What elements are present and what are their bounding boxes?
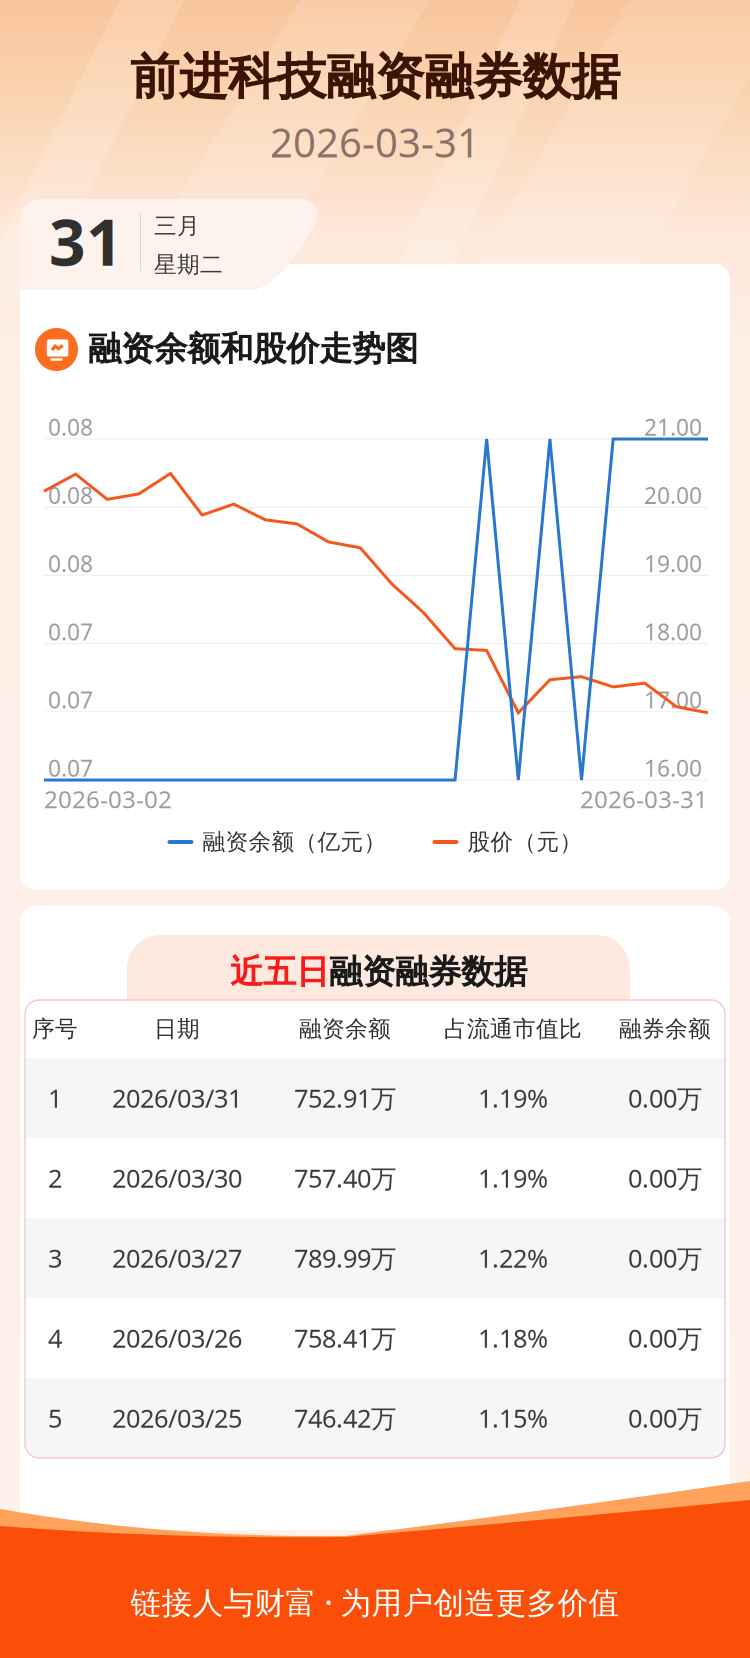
staticText: 0.00万 [628,1401,702,1435]
staticText: 2026/03/27 [112,1241,242,1275]
staticText: 1.18% [478,1321,548,1355]
staticText: 5 [48,1401,62,1435]
staticText: 1.19% [478,1161,548,1195]
staticText: 0.08 [48,480,93,510]
staticText: 2026-03-02 [44,783,172,815]
staticText: 占流通市值比 [444,1015,582,1043]
staticText: 1.22% [478,1241,548,1275]
staticText: 746.42万 [294,1401,396,1435]
staticText: 21.00 [644,412,702,442]
staticText: 0.08 [48,548,93,578]
staticText: 2026/03/25 [112,1401,242,1435]
staticText: 2 [48,1161,62,1195]
staticText: 融资融券数据 [329,951,527,992]
staticText: 融资余额（亿元） [202,828,386,856]
staticText: 0.07 [48,616,93,647]
staticText: 20.00 [644,480,702,510]
staticText: 日期 [154,1015,200,1043]
staticText: 0.00万 [628,1241,702,1275]
staticText: 股价（元） [467,828,582,856]
staticText: 近五日 [230,951,329,992]
staticText: 0.07 [48,753,93,783]
staticText: 789.99万 [294,1241,396,1275]
staticText: 1.15% [478,1401,548,1435]
staticText: 0.00万 [628,1081,702,1115]
staticText: 16.00 [644,753,702,783]
staticText: 757.40万 [294,1161,396,1195]
staticText: 31 [49,198,123,283]
staticText: 2026/03/31 [112,1081,242,1115]
staticText: 链接人与财富 · 为用户创造更多价值 [130,1582,619,1622]
staticText: 前进科技融资融券数据 [130,47,620,107]
staticText: 0.08 [48,412,93,442]
staticText: 0.00万 [628,1161,702,1195]
staticText: 星期二 [154,251,223,279]
staticText: 0.07 [48,685,93,715]
staticText: 融资余额 [299,1015,391,1043]
staticText: 1 [48,1081,62,1115]
staticText: 融资余额和股价走势图 [88,328,418,369]
staticText: 三月 [154,212,200,240]
staticText: 752.91万 [294,1081,396,1115]
staticText: 19.00 [644,548,702,578]
staticText: 18.00 [644,616,702,647]
staticText: 序号 [32,1015,78,1043]
staticText: 2026-03-31 [580,783,708,815]
staticText: 4 [48,1321,62,1355]
staticText: 3 [48,1241,62,1275]
staticText: 2026/03/30 [112,1161,242,1195]
staticText: 1.19% [478,1081,548,1115]
staticText: 17.00 [644,685,702,715]
staticText: 融券余额 [619,1015,711,1043]
staticText: 758.41万 [294,1321,396,1355]
staticText: 2026/03/26 [112,1321,242,1355]
staticText: 2026-03-31 [270,115,480,168]
staticText: 0.00万 [628,1321,702,1355]
